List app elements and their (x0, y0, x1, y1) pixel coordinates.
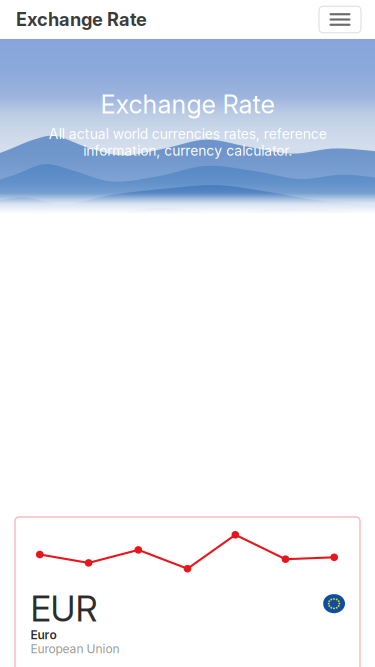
staticText: All actual world currencies rates, refer… (48, 126, 326, 159)
staticText: Exchange Rate (16, 8, 147, 30)
staticText: Exchange Rate (100, 89, 274, 120)
staticText: EUR (30, 588, 97, 630)
button[interactable]: Exchange Rate (0, 0, 147, 39)
staticText: European Union (30, 642, 119, 656)
button[interactable]: EUR (15, 517, 360, 667)
button[interactable]: Open menu (319, 6, 375, 33)
staticText: Euro (30, 628, 56, 642)
